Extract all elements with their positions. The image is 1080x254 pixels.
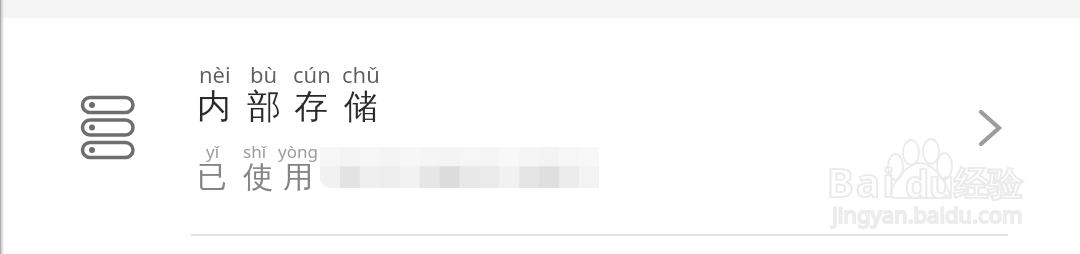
- staticText: yòng: [278, 140, 318, 163]
- staticText: 已: [197, 158, 227, 196]
- staticText: 使: [243, 158, 273, 196]
- staticText: du: [905, 157, 954, 209]
- staticText: 经验: [954, 163, 1022, 206]
- staticText: jingyan.baidu.com: [832, 199, 1023, 229]
- staticText: 储: [344, 85, 378, 128]
- staticText: 内: [197, 85, 231, 128]
- staticText: cún: [293, 59, 331, 89]
- staticText: shǐ: [243, 140, 267, 163]
- staticText: bù: [250, 59, 278, 89]
- staticText: Bai: [827, 154, 898, 208]
- staticText: 存: [294, 85, 328, 128]
- staticText: 部: [247, 85, 281, 128]
- staticText: 用: [283, 158, 313, 196]
- other: Open internal storage: [975, 106, 1005, 150]
- other: Internal storage: [80, 94, 138, 162]
- staticText: nèi: [199, 59, 231, 89]
- button[interactable]: Internal storage: [0, 18, 1080, 254]
- staticText: chǔ: [342, 59, 380, 89]
- staticText: yǐ: [206, 140, 220, 163]
